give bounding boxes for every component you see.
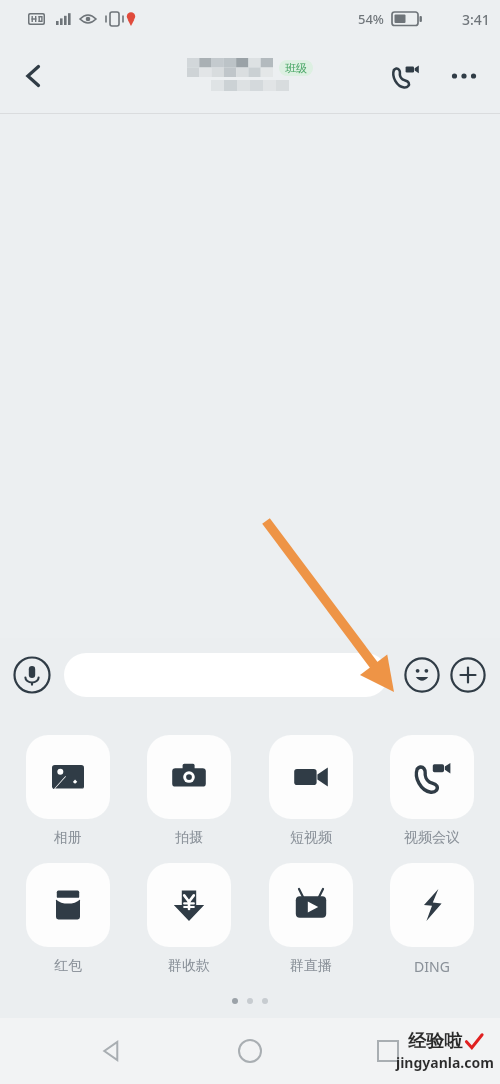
button[interactable]: More actions [448, 655, 488, 695]
button[interactable]: 短视频 [261, 735, 361, 847]
button[interactable]: Back [10, 52, 58, 100]
button[interactable]: Recents [362, 1025, 414, 1077]
button[interactable]: 群收款 [139, 863, 239, 975]
staticText: 红包 [54, 957, 82, 975]
staticText: 54% [358, 10, 384, 28]
button[interactable]: 红包 [18, 863, 118, 975]
button[interactable]: Voice message [12, 655, 52, 695]
button[interactable] [64, 653, 388, 697]
staticText: DING [414, 957, 450, 976]
staticText: 3:41 [462, 10, 490, 29]
staticText: 视频会议 [404, 829, 460, 847]
button[interactable]: 相册 [18, 735, 118, 847]
staticText: 群直播 [290, 957, 332, 975]
staticText: 班级 [285, 61, 307, 75]
button[interactable]: More options [442, 54, 486, 98]
staticText: 相册 [54, 829, 82, 847]
staticText: 拍摄 [175, 829, 203, 847]
staticText: jingyanla.com [396, 1053, 494, 1072]
staticText: 群收款 [168, 957, 210, 975]
button[interactable]: 视频会议 [382, 735, 482, 847]
button[interactable]: DING [382, 863, 482, 976]
button[interactable]: Emoji [402, 655, 442, 695]
button[interactable]: Home [224, 1025, 276, 1077]
button[interactable]: Video call [382, 53, 428, 99]
button[interactable]: Back [86, 1025, 138, 1077]
button[interactable]: 拍摄 [139, 735, 239, 847]
staticText: 短视频 [290, 829, 332, 847]
staticText: 经验啦 [408, 1030, 462, 1053]
button[interactable]: 群直播 [261, 863, 361, 975]
